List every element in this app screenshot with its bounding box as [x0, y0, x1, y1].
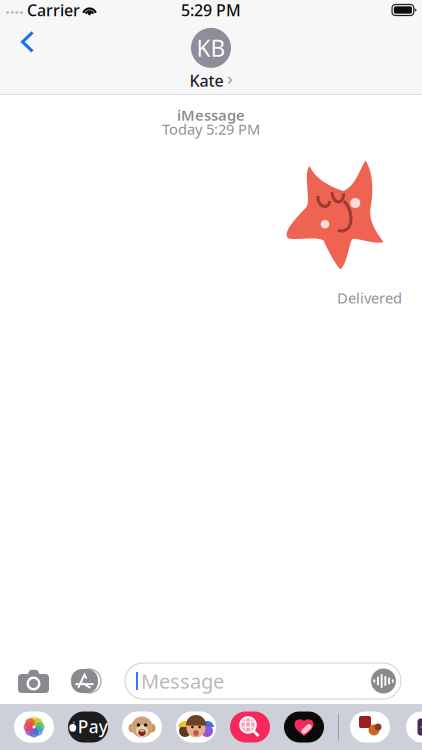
staticText: 5:29 PM	[181, 0, 241, 21]
button[interactable]: Apple Pay	[68, 711, 108, 742]
button[interactable]: Animoji	[122, 711, 162, 742]
button[interactable]: Images	[230, 711, 270, 742]
button[interactable]: App Store	[60, 660, 125, 702]
button[interactable]: Back	[0, 24, 47, 66]
button[interactable]: Camera	[0, 660, 60, 702]
button[interactable]: Stickers	[350, 711, 390, 742]
button[interactable]: Message	[125, 663, 401, 699]
staticText: iMessage	[177, 105, 245, 125]
staticText: Carrier	[27, 0, 80, 21]
button[interactable]: KB	[189, 24, 232, 91]
staticText: Kate	[189, 70, 223, 91]
button[interactable]: Digital Touch	[284, 711, 324, 742]
staticText: Pay	[78, 715, 108, 738]
staticText: Today 5:29 PM	[162, 119, 260, 139]
staticText: Message	[141, 668, 224, 694]
staticText: Delivered	[337, 288, 402, 307]
button[interactable]: Memoji	[176, 711, 216, 742]
button[interactable]: More apps	[406, 711, 422, 742]
staticText: KB	[196, 33, 225, 63]
button[interactable]: Photos	[14, 711, 54, 742]
